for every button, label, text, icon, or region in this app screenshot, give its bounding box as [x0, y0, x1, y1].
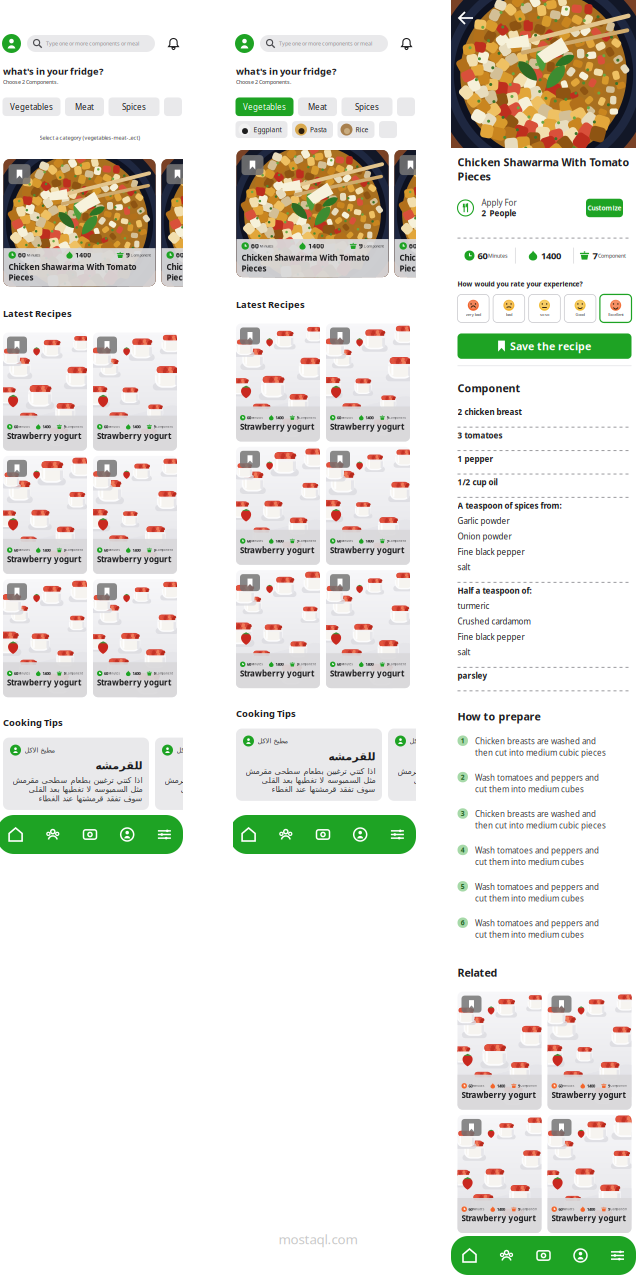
- staticText: Fine black pepper: [457, 631, 524, 642]
- staticText: 9: [64, 671, 66, 676]
- button[interactable]: Profile: [235, 34, 254, 53]
- staticText: turmeric: [457, 601, 489, 611]
- button[interactable]: 60: [457, 992, 541, 1110]
- button[interactable]: Settings: [599, 1236, 636, 1275]
- staticText: 60: [409, 241, 417, 250]
- button[interactable]: 60: [236, 150, 388, 277]
- button[interactable]: Notifications: [400, 37, 413, 50]
- staticText: 9: [64, 424, 66, 429]
- staticText: Strawberry yogurt: [551, 1213, 625, 1223]
- staticText: cut them into medium cubes: [475, 893, 584, 904]
- button[interactable]: 60: [394, 150, 546, 277]
- staticText: Minutes: [251, 416, 262, 419]
- staticText: 1/2 cup oil: [457, 477, 497, 487]
- button[interactable]: Settings: [379, 815, 416, 854]
- button[interactable]: Profile: [562, 1236, 599, 1275]
- button[interactable]: 60: [93, 333, 177, 451]
- button[interactable]: Spices: [108, 97, 159, 116]
- staticText: so so: [540, 312, 549, 317]
- button[interactable]: 60: [326, 570, 410, 688]
- button[interactable]: 60: [93, 456, 177, 574]
- staticText: 1400: [42, 424, 50, 429]
- button[interactable]: Back: [451, 0, 483, 34]
- button[interactable]: Home: [230, 815, 267, 854]
- staticText: 60: [104, 671, 108, 676]
- button[interactable]: 60: [236, 323, 320, 441]
- staticText: Meat: [75, 101, 94, 112]
- button[interactable]: Meat: [298, 97, 337, 116]
- staticText: Component: [457, 381, 520, 395]
- button[interactable]: Excellent: [600, 294, 631, 322]
- button[interactable]: 60: [3, 333, 87, 451]
- button[interactable]: Profile: [342, 815, 379, 854]
- staticText: cut them into medium cubes: [475, 929, 584, 940]
- staticText: Apply For: [481, 197, 516, 208]
- button[interactable]: 60: [457, 1115, 541, 1233]
- button[interactable]: Vegetables: [235, 97, 293, 116]
- button[interactable]: 60: [93, 579, 177, 697]
- staticText: 1400: [365, 415, 373, 420]
- button[interactable]: Good: [564, 294, 596, 322]
- staticText: 60: [337, 662, 341, 667]
- staticText: 9: [387, 415, 389, 420]
- staticText: Crushed cardamom: [457, 616, 530, 627]
- button[interactable]: Vegetables: [2, 97, 60, 116]
- button[interactable]: 60: [236, 570, 320, 688]
- button[interactable]: Customize: [586, 199, 623, 217]
- button[interactable]: Community: [267, 815, 304, 854]
- staticText: Strawberry yogurt: [330, 421, 404, 432]
- button[interactable]: Home: [451, 1236, 488, 1275]
- staticText: Component: [598, 252, 626, 259]
- button[interactable]: Camera: [525, 1236, 562, 1275]
- button[interactable]: Save the recipe: [457, 333, 631, 359]
- button[interactable]: very bad: [457, 294, 489, 322]
- button[interactable]: 60: [3, 456, 87, 574]
- staticText: 1400: [308, 241, 324, 250]
- button[interactable]: Camera: [304, 815, 342, 854]
- staticText: Component: [156, 425, 173, 428]
- staticText: 60: [14, 671, 18, 676]
- button[interactable]: Community: [34, 815, 71, 854]
- button[interactable]: 60: [547, 992, 631, 1110]
- staticText: 1400: [497, 1083, 505, 1088]
- button[interactable]: bad: [493, 294, 525, 322]
- staticText: Minutes: [251, 539, 262, 543]
- button[interactable]: 60: [3, 159, 155, 286]
- staticText: Wash tomatoes and peppers and: [475, 845, 599, 856]
- button[interactable]: Camera: [71, 815, 109, 854]
- staticText: People: [489, 208, 516, 219]
- button[interactable]: 60: [547, 1115, 631, 1233]
- button[interactable]: Profile: [2, 34, 21, 53]
- staticText: 1400: [587, 1083, 595, 1088]
- staticText: Chicken breasts are washed and: [475, 736, 596, 746]
- button[interactable]: so so: [529, 294, 560, 322]
- button[interactable]: Profile: [109, 815, 146, 854]
- button[interactable]: 60: [3, 579, 87, 697]
- staticText: 5: [461, 882, 465, 891]
- staticText: Save the recipe: [510, 339, 591, 353]
- button[interactable]: 60: [326, 447, 410, 565]
- staticText: اذا كنتي ترغبين بطعام سطحى مقرمش مثل الس…: [12, 776, 142, 803]
- staticText: Strawberry yogurt: [240, 668, 314, 679]
- staticText: Chicken Shawarma With Tomato Pieces: [8, 261, 136, 283]
- staticText: 9: [297, 662, 299, 667]
- button[interactable]: Pasta: [292, 121, 333, 138]
- button[interactable]: Community: [488, 1236, 525, 1275]
- staticText: Component: [389, 416, 406, 419]
- button[interactable]: Home: [0, 815, 34, 854]
- button[interactable]: Eggplant: [235, 121, 287, 138]
- staticText: 9: [126, 251, 130, 259]
- staticText: Minutes: [341, 539, 352, 543]
- button[interactable]: 60: [161, 159, 313, 286]
- button[interactable]: Meat: [65, 97, 104, 116]
- staticText: Choose 2 Components.: [3, 78, 58, 85]
- staticText: very bad: [466, 312, 481, 317]
- staticText: 60: [558, 1206, 562, 1212]
- button[interactable]: Spices: [341, 97, 392, 116]
- button[interactable]: Settings: [146, 815, 183, 854]
- button[interactable]: 60: [326, 323, 410, 441]
- button[interactable]: Notifications: [167, 37, 180, 50]
- button[interactable]: 60: [236, 447, 320, 565]
- button[interactable]: Rice: [337, 121, 374, 138]
- staticText: Cooking Tips: [236, 707, 296, 719]
